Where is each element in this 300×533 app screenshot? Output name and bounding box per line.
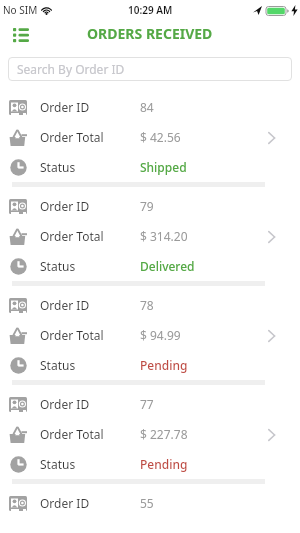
staticText: 84 xyxy=(140,99,154,115)
staticText: $ 94.99 xyxy=(140,327,181,343)
staticText: Status xyxy=(40,456,76,472)
staticText: Shipped xyxy=(140,159,187,175)
staticText: Pending xyxy=(140,357,188,373)
button[interactable]: Order ID xyxy=(0,389,300,419)
button[interactable]: Order Total xyxy=(0,221,300,251)
staticText: Order ID xyxy=(40,396,90,412)
staticText: $ 42.56 xyxy=(140,129,181,145)
staticText: Order ID xyxy=(40,99,90,115)
staticText: Order ID xyxy=(40,198,90,214)
button[interactable]: Order ID xyxy=(0,488,300,518)
staticText: Status xyxy=(40,159,76,175)
staticText: No SIM xyxy=(3,3,38,17)
staticText: 79 xyxy=(140,198,154,214)
button[interactable]: Status xyxy=(0,251,300,281)
button[interactable]: Order Total xyxy=(0,419,300,449)
staticText: 78 xyxy=(140,297,154,313)
staticText: 77 xyxy=(140,396,154,412)
button[interactable]: Order Total xyxy=(0,122,300,152)
button[interactable]: Search By Order ID xyxy=(8,57,292,81)
staticText: Order Total xyxy=(40,228,104,244)
staticText: Order ID xyxy=(40,297,90,313)
button[interactable]: Status xyxy=(0,449,300,479)
button[interactable]: Status xyxy=(0,350,300,380)
staticText: Delivered xyxy=(140,258,195,274)
staticText: $ 314.20 xyxy=(140,228,188,244)
staticText: Pending xyxy=(140,456,188,472)
staticText: 10:29 AM xyxy=(128,3,173,17)
button[interactable]: Order ID xyxy=(0,290,300,320)
button[interactable]: Order ID xyxy=(0,92,300,122)
staticText: ORDERS RECEIVED xyxy=(87,24,213,43)
staticText: Order Total xyxy=(40,129,104,145)
staticText: Order Total xyxy=(40,327,104,343)
staticText: 55 xyxy=(140,495,154,511)
button[interactable]: Order Total xyxy=(0,320,300,350)
button[interactable] xyxy=(8,21,34,47)
staticText: Order Total xyxy=(40,426,104,442)
staticText: Search By Order ID xyxy=(17,61,125,77)
button[interactable]: Status xyxy=(0,152,300,182)
staticText: $ 227.78 xyxy=(140,426,188,442)
staticText: Status xyxy=(40,258,76,274)
staticText: Order ID xyxy=(40,495,90,511)
staticText: Status xyxy=(40,357,76,373)
button[interactable]: Order ID xyxy=(0,191,300,221)
